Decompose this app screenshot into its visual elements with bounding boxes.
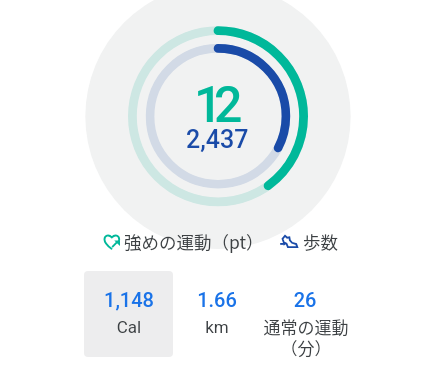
button[interactable] (177, 271, 257, 357)
staticText: 強めの運動（pt） (124, 229, 264, 253)
other: Heart points (104, 234, 120, 249)
staticText: km (147, 317, 287, 337)
staticText: 26 (235, 288, 375, 311)
staticText: 歩数 (303, 229, 338, 253)
staticText: 1,148 (59, 288, 199, 311)
button[interactable] (258, 271, 354, 365)
button[interactable] (84, 271, 173, 357)
button[interactable]: Heart points (102, 230, 250, 254)
staticText: Cal (59, 317, 199, 337)
other: Steps (280, 234, 298, 250)
staticText: 12 (194, 76, 235, 135)
button[interactable]: Steps (278, 230, 336, 254)
staticText: 2,437 (186, 125, 249, 154)
staticText: 1.66 (147, 288, 287, 311)
staticText: 通常の運動（分） (263, 314, 349, 360)
